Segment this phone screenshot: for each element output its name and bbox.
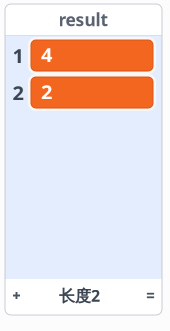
staticText: 4 <box>41 41 52 68</box>
staticText: 2 <box>41 78 52 105</box>
staticText: 2 <box>12 79 23 106</box>
staticText: result <box>58 8 108 31</box>
button[interactable]: 2 <box>28 74 156 111</box>
button[interactable]: Add item <box>5 279 28 312</box>
staticText: 长度2 <box>59 285 100 306</box>
button[interactable]: Set value <box>139 279 162 312</box>
staticText: 1 <box>12 42 23 69</box>
button[interactable]: 4 <box>28 37 156 74</box>
